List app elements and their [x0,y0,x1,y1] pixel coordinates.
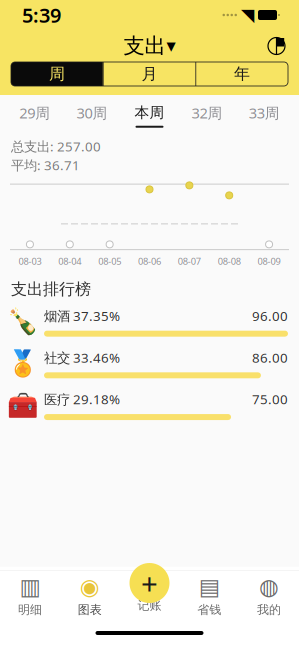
staticText: 总支出: 257.00 [11,137,101,155]
staticText: 08-04 [58,255,81,267]
staticText: 08-06 [138,255,161,267]
button[interactable]: 记账 [126,560,172,606]
staticText: 平均: 36.71 [11,156,80,174]
staticText: 我的 [257,602,281,617]
button[interactable]: ◉ [60,567,120,621]
staticText: 本周 [134,104,164,122]
staticText: 08-08 [218,255,241,267]
staticText: ▤ [199,574,220,599]
staticText: ◥ [241,5,254,25]
staticText: 08-05 [98,255,121,267]
staticText: 75.00 [252,390,288,408]
button[interactable]: 33周 [236,95,293,132]
button[interactable]: 支出 [115,29,183,63]
staticText: ▼ [166,39,175,53]
staticText: 支出 [123,33,165,59]
staticText: 年 [234,64,250,84]
staticText: 32周 [191,103,222,122]
button[interactable]: 🏅 [0,343,299,384]
staticText: 记账 [137,598,161,613]
button[interactable]: ◍ [239,567,299,621]
staticText: 29周 [19,103,50,122]
staticText: 烟酒 37.35% [44,307,120,325]
staticText: 周 [49,64,65,84]
staticText: 支出排行榜 [11,279,91,299]
staticText: ◉ [80,574,100,599]
button[interactable]: 🍾 [0,301,299,343]
button[interactable]: 月 [104,62,195,86]
button[interactable]: 周 [11,62,103,86]
staticText: 96.00 [252,307,288,325]
button[interactable]: 本周 [121,96,178,132]
staticText: 🍾 [7,307,39,336]
staticText: 30周 [77,103,108,122]
button[interactable]: 🧰 [0,384,299,426]
staticText: 08-07 [178,255,201,267]
staticText: 08-09 [258,255,281,267]
button[interactable]: 年 [196,62,288,86]
staticText: 月 [141,64,157,84]
button[interactable]: 29周 [6,95,63,132]
button[interactable]: 饼图 [262,31,291,60]
staticText: ▥ [19,574,40,599]
staticText: 明细 [18,602,42,617]
staticText: 省钱 [197,602,221,617]
button[interactable]: ▤ [179,567,239,621]
staticText: 5:39 [22,2,61,28]
button[interactable]: ▥ [0,567,60,621]
staticText: 🧰 [7,391,39,420]
staticText: 33周 [249,103,280,122]
staticText: ◍ [259,574,279,599]
button[interactable]: 32周 [178,95,236,132]
staticText: 🏅 [7,349,39,378]
staticText: 社交 33.46% [44,349,120,366]
staticText: 图表 [78,602,102,617]
staticText: 08-03 [18,255,41,267]
staticText: 86.00 [252,349,288,366]
staticText: + [141,563,158,602]
button[interactable]: 30周 [63,95,121,132]
staticText: 医疗 29.18% [44,390,120,408]
